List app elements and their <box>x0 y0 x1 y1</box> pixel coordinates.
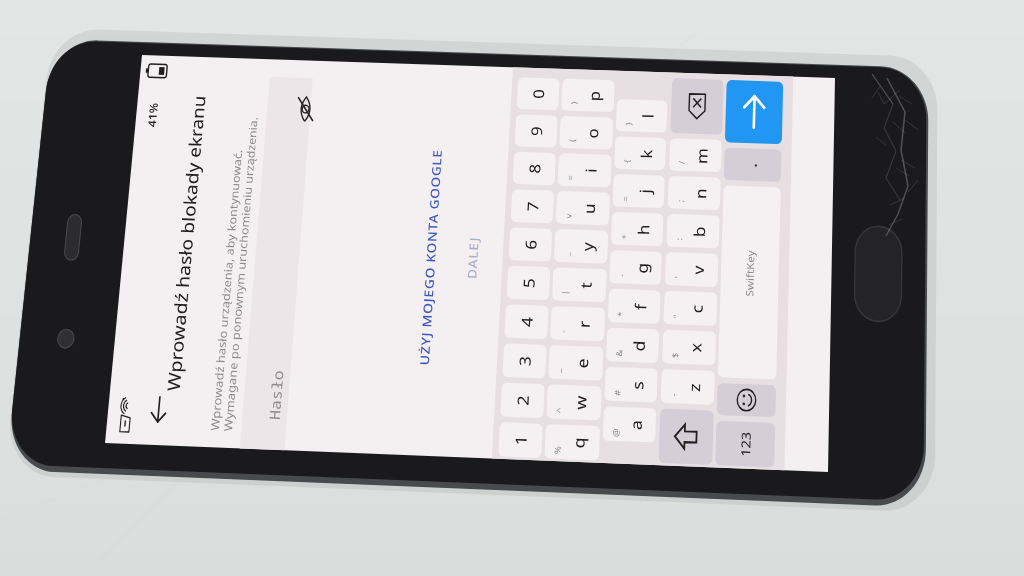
button[interactable]: Phone showing lock screen password entry <box>0 0 1024 576</box>
